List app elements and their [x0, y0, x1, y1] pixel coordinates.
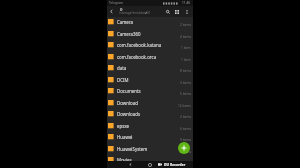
- button[interactable]: Documents: [107, 86, 193, 98]
- staticText: Documents: [117, 88, 181, 94]
- staticText: 1 item: [181, 161, 191, 165]
- staticText: com.facebook.orca: [117, 54, 181, 60]
- button[interactable]: Downloads: [107, 109, 193, 121]
- button[interactable]: DCIM: [107, 75, 193, 87]
- staticText: 12 items: [178, 104, 191, 108]
- staticText: 3 items: [180, 81, 191, 85]
- button[interactable]: Movies: [107, 155, 193, 167]
- staticText: 1 item: [181, 46, 191, 50]
- staticText: 0: [120, 7, 123, 13]
- button[interactable]: Camera: [107, 17, 193, 29]
- button[interactable]: Back: [127, 161, 134, 168]
- button[interactable]: Back: [107, 7, 116, 16]
- staticText: DU Recorder: [164, 162, 186, 167]
- staticText: 3 items: [180, 150, 191, 154]
- staticText: data: [117, 65, 181, 71]
- staticText: Camera360: [117, 31, 181, 37]
- button[interactable]: Camera360: [107, 29, 193, 41]
- staticText: Movies: [117, 157, 181, 163]
- button[interactable]: com.facebook.katana: [107, 40, 193, 52]
- staticText: 2 items: [180, 115, 191, 119]
- button[interactable]: data: [107, 63, 193, 75]
- button[interactable]: Home: [146, 161, 153, 168]
- staticText: Downloads: [117, 111, 181, 117]
- button[interactable]: Huawei: [107, 132, 193, 144]
- staticText: /storage/emulated/0: [119, 11, 151, 15]
- button[interactable]: Switch view: [172, 7, 181, 16]
- staticText: 4 items: [180, 35, 191, 39]
- staticText: epsxe: [117, 123, 181, 129]
- button[interactable]: com.facebook.orca: [107, 52, 193, 64]
- staticText: 5 items: [180, 92, 191, 96]
- button[interactable]: epsxe: [107, 121, 193, 133]
- button[interactable]: Add: [178, 142, 190, 154]
- staticText: 6 items: [180, 127, 191, 131]
- staticText: Camera: [117, 19, 181, 25]
- button[interactable]: HuaweiSystem: [107, 144, 193, 156]
- staticText: 11:46: [182, 1, 191, 5]
- staticText: 9 items: [180, 138, 191, 142]
- button[interactable]: Download: [107, 98, 193, 110]
- button[interactable]: More options: [182, 7, 191, 16]
- staticText: Huawei: [117, 134, 181, 140]
- staticText: HuaweiSystem: [117, 146, 181, 152]
- staticText: 8 items: [180, 69, 191, 73]
- button[interactable]: Search: [163, 7, 172, 16]
- staticText: Download: [117, 100, 181, 106]
- staticText: Telegram: [109, 1, 123, 5]
- staticText: DCIM: [117, 77, 181, 83]
- staticText: 2 items: [180, 23, 191, 27]
- staticText: 1 item: [181, 58, 191, 62]
- staticText: com.facebook.katana: [117, 42, 181, 48]
